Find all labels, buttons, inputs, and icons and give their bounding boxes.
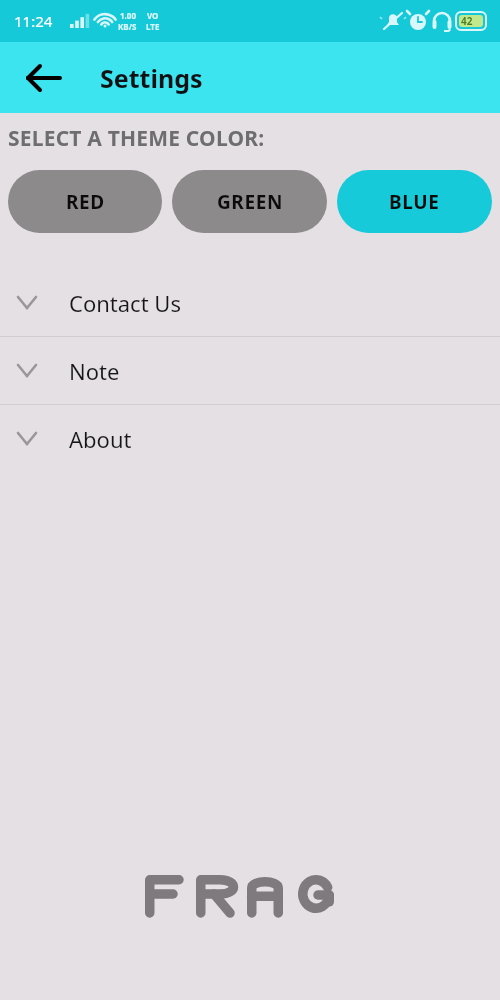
staticText: GREEN	[217, 189, 283, 215]
staticText: 11:24	[14, 11, 53, 31]
staticText: Note	[69, 356, 120, 386]
button[interactable]: Back	[18, 56, 62, 100]
button[interactable]: About	[0, 405, 500, 472]
staticText: VO	[147, 10, 159, 21]
staticText: Settings	[100, 61, 203, 95]
button[interactable]: RED	[8, 170, 162, 233]
staticText: About	[69, 424, 132, 454]
staticText: SELECT A THEME COLOR:	[8, 124, 265, 153]
staticText: 42	[461, 14, 473, 28]
staticText: KB/S	[118, 21, 137, 32]
button[interactable]: Contact Us	[0, 269, 500, 336]
staticText: BLUE	[389, 189, 440, 215]
button[interactable]: Note	[0, 337, 500, 404]
button[interactable]: BLUE	[337, 170, 492, 233]
button[interactable]: GREEN	[172, 170, 327, 233]
staticText: LTE	[146, 21, 160, 32]
staticText: RED	[66, 189, 105, 215]
staticText: Contact Us	[69, 288, 181, 318]
staticText: 1.00	[120, 10, 136, 21]
